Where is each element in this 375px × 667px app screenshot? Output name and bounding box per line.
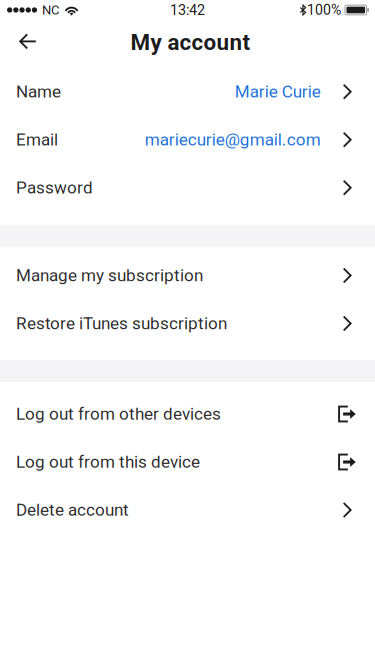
staticText: Manage my subscription: [16, 265, 203, 285]
button[interactable]: Delete account: [0, 486, 375, 534]
staticText: Log out from other devices: [16, 404, 221, 424]
staticText: Email: [16, 130, 58, 150]
staticText: 100%: [307, 2, 341, 18]
button[interactable]: Email: [0, 116, 375, 164]
staticText: Marie Curie: [235, 82, 321, 102]
button[interactable]: Name: [0, 68, 375, 116]
staticText: Delete account: [16, 500, 129, 520]
button[interactable]: Back: [0, 23, 49, 65]
button[interactable]: Password: [0, 164, 375, 212]
button[interactable]: Manage my subscription: [0, 251, 375, 299]
button[interactable]: Log out from this device: [0, 438, 375, 486]
button[interactable]: Log out from other devices: [0, 390, 375, 438]
staticText: Restore iTunes subscription: [16, 313, 227, 333]
button[interactable]: Restore iTunes subscription: [0, 299, 375, 347]
staticText: NC: [42, 2, 60, 18]
staticText: Name: [16, 82, 61, 102]
staticText: Log out from this device: [16, 452, 200, 472]
staticText: mariecurie@gmail.com: [145, 130, 321, 150]
staticText: Password: [16, 178, 93, 198]
staticText: 13:42: [170, 2, 205, 18]
staticText: My account: [130, 29, 250, 55]
